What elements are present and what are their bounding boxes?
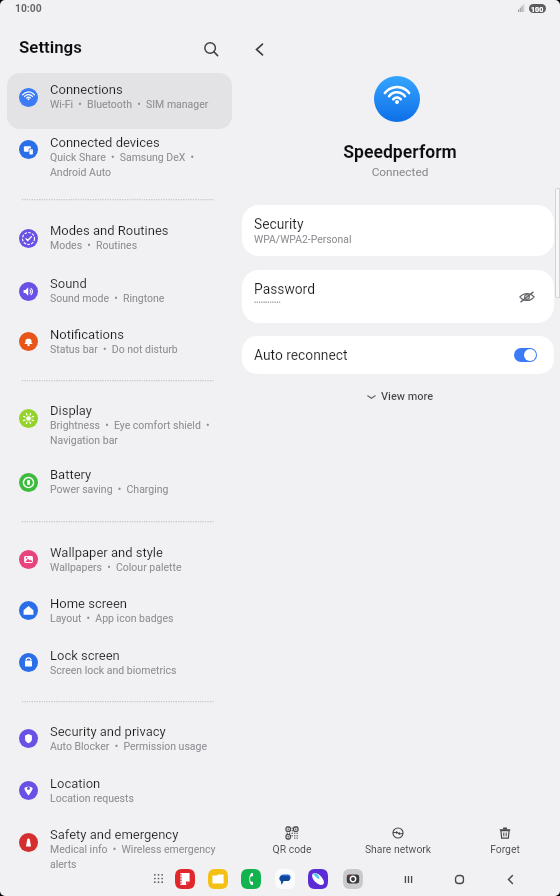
staticText: Modes • Routines [50, 239, 245, 251]
staticText: Wallpapers • Colour palette [50, 561, 245, 573]
button[interactable]: Home [447, 867, 471, 891]
button[interactable]: Password [242, 270, 554, 323]
staticText: Layout • App icon badges [50, 612, 245, 624]
staticText: Battery [50, 467, 250, 482]
button[interactable] [7, 457, 232, 513]
staticText: Quick Share • Samsung DeX • Android Auto [50, 151, 245, 179]
button[interactable] [7, 638, 232, 694]
staticText: 100 [531, 5, 544, 13]
staticText: Sound mode • Ringtone [50, 292, 245, 304]
staticText: Auto Blocker • Permission usage [50, 740, 245, 752]
button[interactable]: Messages [275, 869, 295, 889]
button[interactable] [7, 73, 232, 129]
staticText: Location [50, 776, 250, 791]
staticText: Share network [353, 843, 443, 855]
staticText: Modes and Routines [50, 223, 250, 238]
button[interactable] [7, 766, 232, 822]
staticText: Notifications [50, 327, 250, 342]
staticText: Location requests [50, 792, 245, 804]
staticText: Status bar • Do not disturb [50, 343, 245, 355]
staticText: Power saving • Charging [50, 483, 245, 495]
staticText: Sound [50, 276, 250, 291]
button[interactable] [7, 714, 232, 770]
staticText: WPA/WPA2-Personal [254, 233, 352, 245]
staticText: Speedperform [240, 142, 560, 163]
button[interactable]: View more [357, 387, 444, 406]
button[interactable] [7, 394, 232, 465]
staticText: Password [254, 281, 315, 297]
button[interactable]: Back [498, 867, 522, 891]
staticText: Wallpaper and style [50, 545, 250, 560]
button[interactable]: Auto reconnect [242, 336, 554, 374]
button[interactable]: Security [242, 205, 554, 256]
button[interactable]: Auto reconnect toggle [514, 348, 537, 362]
button[interactable]: Camera [343, 869, 363, 889]
staticText: Security [254, 216, 304, 232]
staticText: •••••••••••• [254, 299, 281, 307]
staticText: Wi-Fi • Bluetooth • SIM manager [50, 98, 245, 110]
staticText: Display [50, 403, 250, 418]
button[interactable]: All apps [149, 869, 168, 888]
staticText: 10:00 [15, 2, 42, 14]
staticText: Connected [240, 165, 560, 179]
button[interactable] [7, 535, 232, 591]
button[interactable]: Internet [308, 869, 328, 889]
staticText: Auto reconnect [254, 347, 348, 363]
button[interactable]: Back [243, 33, 275, 65]
button[interactable] [7, 586, 232, 642]
button[interactable] [7, 317, 232, 373]
button[interactable]: Samsung Notes [175, 869, 195, 889]
staticText: Brightness • Eye comfort shield • Naviga… [50, 419, 245, 447]
button[interactable] [7, 125, 232, 196]
staticText: Forget [460, 843, 550, 855]
button[interactable] [7, 214, 232, 270]
button[interactable]: QR code [247, 824, 337, 858]
staticText: View more [381, 390, 434, 403]
button[interactable]: Recents [396, 867, 420, 891]
button[interactable] [7, 818, 232, 889]
staticText: Lock screen [50, 648, 250, 663]
staticText: Security and privacy [50, 724, 250, 739]
staticText: Home screen [50, 596, 250, 611]
staticText: Connections [50, 82, 250, 97]
button[interactable]: My Files [208, 869, 228, 889]
staticText: Screen lock and biometrics [50, 664, 245, 676]
staticText: Connected devices [50, 135, 250, 150]
button[interactable]: Search [195, 33, 227, 65]
staticText: Settings [19, 37, 82, 57]
button[interactable]: Show password [514, 284, 540, 310]
button[interactable]: Phone [241, 869, 261, 889]
staticText: Medical info • Wireless emergency alerts [50, 843, 245, 871]
button[interactable] [7, 266, 232, 322]
staticText: QR code [247, 843, 337, 855]
button[interactable]: Forget [460, 824, 550, 858]
staticText: Safety and emergency [50, 827, 250, 842]
button[interactable]: Share network [353, 824, 443, 858]
